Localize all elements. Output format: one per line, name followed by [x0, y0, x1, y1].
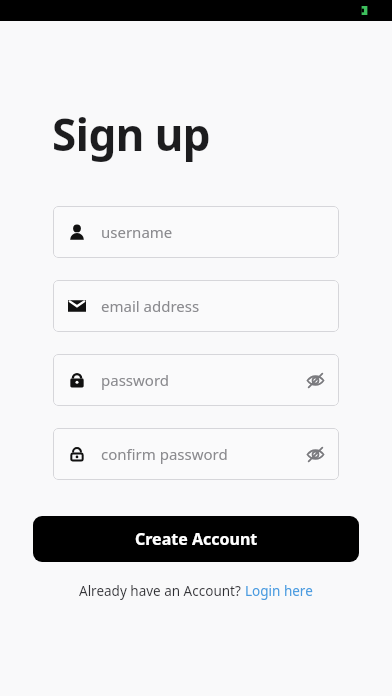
button[interactable]: confirm password	[53, 428, 339, 480]
staticText: email address	[101, 296, 200, 316]
button[interactable]: Toggle password visibility	[303, 368, 327, 392]
button[interactable]: Create Account	[33, 516, 359, 562]
staticText: password	[101, 370, 169, 390]
staticText: confirm password	[101, 444, 228, 464]
staticText: Login here	[245, 582, 313, 600]
staticText: username	[101, 222, 173, 242]
staticText: Create Account	[135, 528, 258, 550]
button[interactable]: password	[53, 354, 339, 406]
staticText: Sign up	[52, 104, 211, 164]
button[interactable]: username	[53, 206, 339, 258]
staticText: Already have an Account?	[79, 582, 245, 600]
button[interactable]: Toggle password visibility	[303, 442, 327, 466]
button[interactable]: Login here	[245, 582, 313, 600]
button[interactable]: email address	[53, 280, 339, 332]
